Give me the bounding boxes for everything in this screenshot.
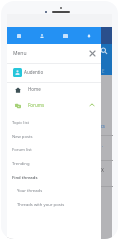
button[interactable]: Menu: [7, 44, 101, 63]
staticText: Forums: [28, 102, 45, 108]
button[interactable]: Your threads: [7, 184, 101, 198]
button[interactable]: Trending: [7, 157, 101, 171]
button[interactable]: Threads with your posts: [7, 198, 101, 212]
button[interactable]: Topic list: [7, 116, 101, 130]
button[interactable]: Alerts: [77, 27, 101, 44]
staticText: ne X: [94, 167, 104, 174]
staticText: Home: [28, 86, 41, 92]
button[interactable]: Close menu: [86, 47, 99, 60]
staticText: Find threads: [12, 175, 38, 181]
staticText: Your threads: [17, 188, 43, 194]
button[interactable]: Forum list: [7, 143, 101, 157]
button[interactable]: Home: [7, 81, 101, 97]
staticText: New posts: [12, 134, 33, 140]
staticText: Threads with your posts: [17, 202, 65, 208]
button[interactable]: Forums: [7, 97, 101, 113]
staticText: Trending: [12, 161, 30, 167]
button[interactable]: Audentio: [7, 63, 101, 81]
staticText: Forum list: [12, 147, 32, 153]
button[interactable]: Dashboard: [7, 27, 30, 44]
button[interactable]: Messages: [53, 27, 77, 44]
button[interactable]: Account: [30, 27, 53, 44]
staticText: Audentio: [24, 69, 44, 75]
staticText: ers ·: [94, 143, 103, 149]
staticText: opics: [94, 123, 105, 129]
button[interactable]: New posts: [7, 130, 101, 144]
button[interactable]: Find threads: [7, 171, 101, 185]
staticText: Topic list: [12, 120, 30, 126]
staticText: Menu: [13, 50, 27, 57]
staticText: THE: [94, 67, 105, 74]
